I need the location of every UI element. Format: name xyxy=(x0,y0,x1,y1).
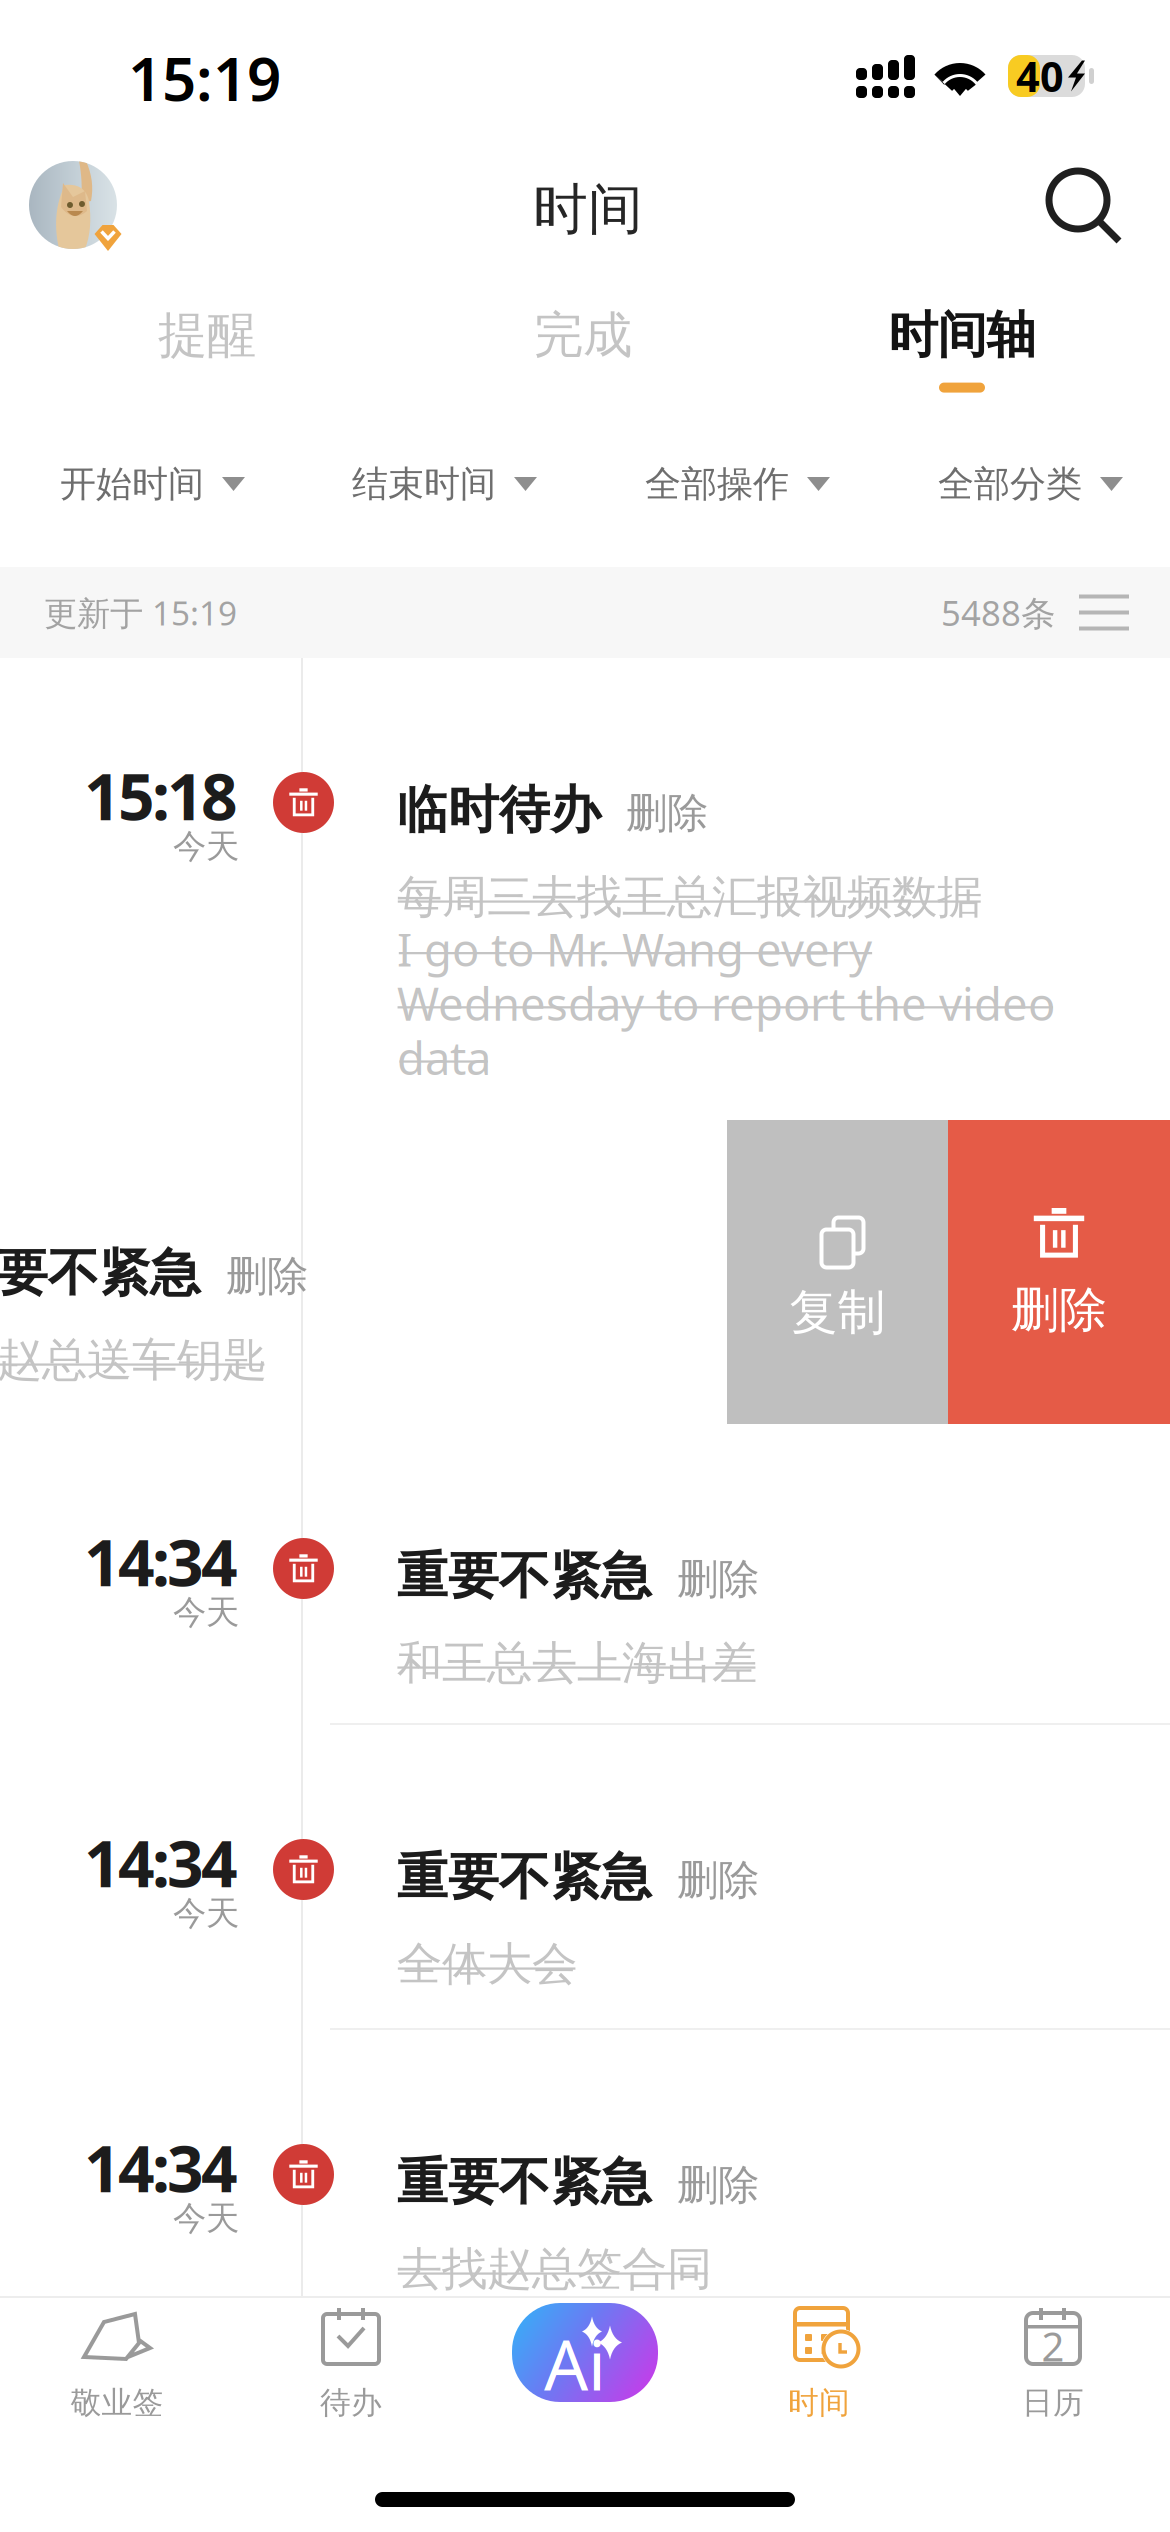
staticText: 复制 xyxy=(789,1283,885,1342)
staticText: 删除 xyxy=(1011,1280,1107,1339)
staticText: 5488条 xyxy=(941,589,1056,635)
button[interactable]: AI assistant xyxy=(468,2315,702,2453)
staticText: 14:34 xyxy=(84,2125,238,2210)
staticText: 14:34 xyxy=(84,1820,238,1905)
staticText: 开始时间 xyxy=(60,462,204,506)
button[interactable]: Profile xyxy=(29,161,117,249)
button[interactable]: 待办 xyxy=(234,2309,468,2459)
staticText: 敬业签 xyxy=(70,2384,163,2422)
button[interactable]: 时间 xyxy=(702,2309,936,2459)
staticText: 删除 xyxy=(226,1251,308,1302)
staticText: 15:19 xyxy=(128,38,281,118)
staticText: 完成 xyxy=(534,305,632,366)
staticText: 今天 xyxy=(173,1592,239,1633)
button[interactable]: 开始时间 xyxy=(60,439,300,529)
button[interactable]: 结束时间 xyxy=(352,439,592,529)
staticText: 全体大会 xyxy=(397,1936,577,1992)
staticText: data xyxy=(397,1027,491,1087)
staticText: I go to Mr. Wang every xyxy=(397,919,872,979)
staticText: 2 xyxy=(1041,2319,1064,2372)
button[interactable]: 15:18 xyxy=(0,658,1170,1120)
staticText: 去找赵总签合同 xyxy=(397,2241,712,2297)
staticText: 今天 xyxy=(173,1893,239,1934)
staticText: 全部分类 xyxy=(938,462,1082,506)
button[interactable]: 敬业签 xyxy=(0,2309,234,2459)
staticText: 和王总去上海出差 xyxy=(397,1635,757,1691)
staticText: 今天 xyxy=(173,826,239,867)
staticText: 重要不紧急 xyxy=(397,1545,652,1607)
staticText: 更新于 15:19 xyxy=(44,590,237,635)
button[interactable]: 14:34 xyxy=(0,1725,1170,2030)
staticText: 赵总送车钥匙 xyxy=(0,1332,267,1388)
staticText: 14:34 xyxy=(84,1519,238,1604)
button[interactable]: 时间轴 xyxy=(812,292,1112,412)
staticText: 时间轴 xyxy=(888,305,1035,366)
staticText: 日历 xyxy=(1022,2384,1084,2422)
staticText: 时间 xyxy=(533,176,643,243)
staticText: 每周三去找王总汇报视频数据 xyxy=(397,869,982,925)
staticText: 删除 xyxy=(677,1855,759,1906)
button[interactable]: 14:34 xyxy=(0,1424,1170,1725)
staticText: 今天 xyxy=(173,2198,239,2239)
staticText: 15:18 xyxy=(84,753,238,838)
button[interactable]: 提醒 xyxy=(57,292,357,412)
button[interactable]: 复制 xyxy=(727,1120,948,1424)
staticText: 临时待办 xyxy=(397,779,601,841)
staticText: 全部操作 xyxy=(645,462,789,506)
staticText: 40 xyxy=(1016,49,1064,103)
staticText: Wednesday to report the video xyxy=(397,973,1055,1033)
staticText: 删除 xyxy=(626,788,708,839)
staticText: 删除 xyxy=(677,1554,759,1605)
staticText: 重要不紧急 xyxy=(397,1846,652,1908)
staticText: 提醒 xyxy=(158,305,256,366)
staticText: 待办 xyxy=(320,2384,382,2422)
button[interactable]: 全部分类 xyxy=(938,439,1170,529)
staticText: 结束时间 xyxy=(352,462,496,506)
button[interactable]: 2 xyxy=(936,2309,1170,2459)
button[interactable]: Search xyxy=(1040,163,1128,251)
button[interactable]: 14:34 xyxy=(0,2030,1170,2296)
staticText: 重要不紧急 xyxy=(397,2151,652,2213)
button[interactable]: 完成 xyxy=(433,292,733,412)
button[interactable]: 删除 xyxy=(948,1120,1170,1424)
staticText: Ai xyxy=(544,2317,606,2410)
button[interactable]: Sort options xyxy=(1056,577,1152,647)
staticText: 时间 xyxy=(788,2384,850,2422)
staticText: 删除 xyxy=(677,2160,759,2211)
button[interactable]: 全部操作 xyxy=(645,439,885,529)
staticText: 要不紧急 xyxy=(0,1242,201,1304)
